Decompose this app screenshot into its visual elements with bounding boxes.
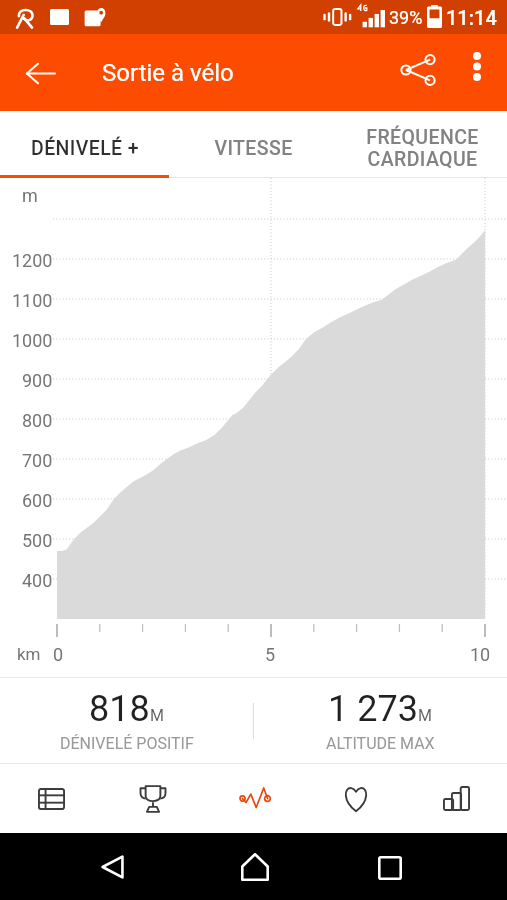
staticText: DÉNIVELÉ POSITIF (60, 734, 194, 753)
staticText: 39% (389, 7, 423, 28)
button[interactable]: Home (226, 838, 283, 895)
button[interactable]: Back (8, 41, 72, 105)
staticText: 800 (22, 410, 53, 431)
button[interactable]: Recents (361, 839, 418, 896)
staticText: 1200 (12, 250, 53, 271)
staticText: Sortie à vélo (102, 59, 234, 87)
button[interactable]: Share (389, 41, 446, 98)
button[interactable]: Back (84, 838, 141, 895)
staticText: 0 (53, 644, 64, 665)
button[interactable]: Statistics (406, 764, 507, 833)
staticText: 818 (89, 688, 150, 730)
staticText: 10 (470, 644, 491, 665)
staticText: FRÉQUENCE CARDIAQUE (366, 126, 479, 171)
button[interactable]: Records (102, 764, 204, 833)
staticText: 1 273 (328, 688, 418, 730)
staticText: 11:14 (446, 6, 497, 29)
staticText: km (17, 644, 41, 664)
button[interactable]: 818 (0, 678, 253, 763)
staticText: 700 (22, 450, 53, 471)
button[interactable]: VITESSE (169, 115, 338, 182)
staticText: M (418, 706, 432, 725)
staticText: 5 (265, 644, 276, 665)
staticText: 500 (22, 530, 53, 551)
staticText: 1000 (12, 330, 53, 351)
staticText: 600 (22, 490, 53, 511)
staticText: m (22, 185, 38, 206)
button[interactable]: Heart rate (305, 764, 406, 833)
button[interactable]: DÉNIVELÉ + (0, 115, 169, 182)
staticText: 900 (22, 370, 53, 391)
button[interactable]: 1 273 (253, 678, 507, 763)
staticText: ALTITUDE MAX (326, 734, 435, 753)
staticText: M (150, 706, 164, 725)
button[interactable]: FRÉQUENCE CARDIAQUE (338, 115, 507, 182)
staticText: DÉNIVELÉ + (31, 137, 139, 160)
staticText: 1100 (12, 290, 53, 311)
button[interactable]: Analysis (204, 764, 305, 833)
staticText: VITESSE (214, 137, 293, 160)
button[interactable]: Summary (0, 764, 102, 833)
button[interactable]: More options (452, 41, 502, 91)
staticText: 400 (22, 570, 53, 591)
